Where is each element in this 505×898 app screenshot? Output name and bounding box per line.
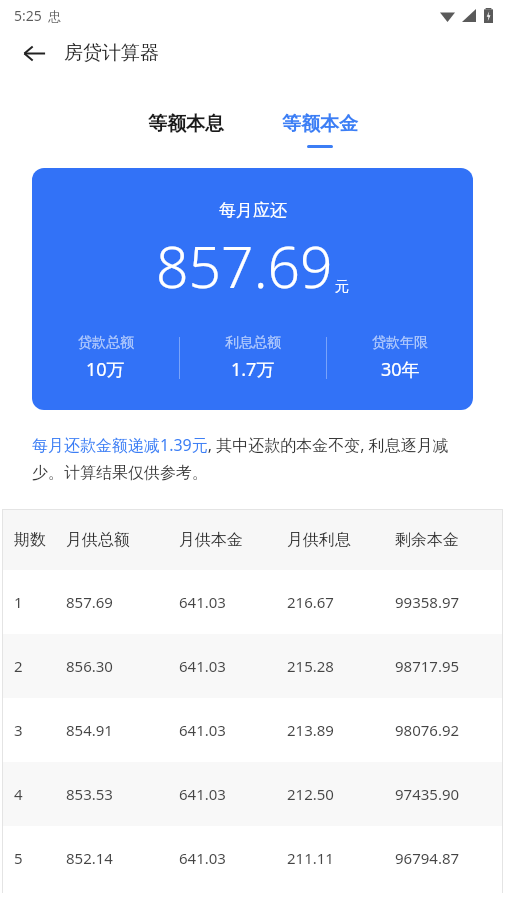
staticText: 641.03 [179, 848, 226, 868]
staticText: 月供总额 [66, 530, 130, 550]
staticText: 4 [14, 784, 23, 804]
staticText: 贷款年限 [372, 334, 428, 352]
button[interactable]: 4 [2, 762, 503, 826]
staticText: 每月还款金额递减1.39元, 其中还款的本金不变, 利息逐月减少。计算结果仅供参… [32, 434, 473, 483]
staticText: 房贷计算器 [64, 41, 159, 65]
staticText: 贷款总额 [78, 334, 134, 352]
staticText: 月供利息 [287, 530, 351, 550]
staticText: 857.69 [156, 227, 333, 305]
staticText: 1.7万 [231, 357, 275, 382]
staticText: 5 [14, 848, 23, 868]
staticText: 854.91 [66, 720, 113, 740]
staticText: 元 [335, 278, 349, 296]
staticText: 2 [14, 656, 23, 676]
staticText: 10万 [86, 357, 125, 382]
staticText: 99358.97 [395, 592, 460, 612]
staticText: 97435.90 [395, 784, 460, 804]
staticText: 1 [14, 592, 23, 612]
button[interactable]: Back [14, 33, 54, 73]
staticText: 等额本息 [148, 112, 224, 136]
staticText: 每月应还 [219, 200, 287, 221]
staticText: 98076.92 [395, 720, 460, 740]
button[interactable]: 5 [2, 826, 503, 890]
button[interactable]: 等额本金 [268, 108, 372, 148]
staticText: 98717.95 [395, 656, 460, 676]
staticText: 213.89 [287, 720, 334, 740]
staticText: 641.03 [179, 784, 226, 804]
staticText: 96794.87 [395, 848, 460, 868]
staticText: 212.50 [287, 784, 334, 804]
staticText: 等额本金 [282, 112, 358, 136]
staticText: 216.67 [287, 592, 334, 612]
staticText: 5:25 [14, 6, 42, 25]
button[interactable]: 1 [2, 570, 503, 634]
staticText: 856.30 [66, 656, 113, 676]
staticText: 641.03 [179, 720, 226, 740]
staticText: 215.28 [287, 656, 334, 676]
button[interactable]: 3 [2, 698, 503, 762]
staticText: 忠 [48, 8, 61, 24]
staticText: 30年 [381, 357, 420, 382]
button[interactable]: 2 [2, 634, 503, 698]
staticText: 期数 [14, 530, 46, 550]
staticText: 3 [14, 720, 23, 740]
staticText: 剩余本金 [395, 530, 459, 550]
staticText: 857.69 [66, 592, 113, 612]
staticText: 月供本金 [179, 530, 243, 550]
staticText: 853.53 [66, 784, 113, 804]
staticText: 641.03 [179, 656, 226, 676]
staticText: 641.03 [179, 592, 226, 612]
button[interactable]: 等额本息 [134, 108, 238, 140]
staticText: 852.14 [66, 848, 113, 868]
staticText: 利息总额 [225, 334, 281, 352]
button[interactable]: 每月应还 [32, 168, 473, 410]
staticText: 211.11 [287, 848, 334, 868]
